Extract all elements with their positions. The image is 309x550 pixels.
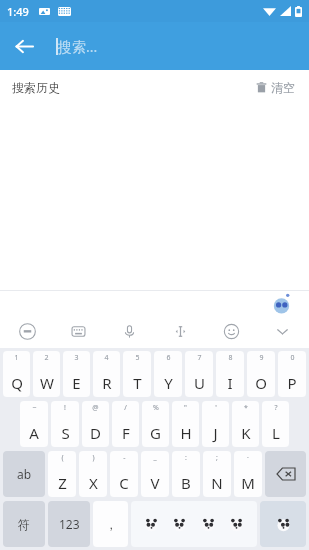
staticText: I [227, 373, 233, 393]
staticText: M [241, 473, 255, 493]
staticText: - [123, 453, 126, 463]
button[interactable]: @ [82, 401, 109, 447]
staticText: ( [61, 453, 64, 463]
button[interactable]: - [110, 451, 138, 497]
staticText: 6 [166, 353, 171, 363]
staticText: % [153, 403, 159, 413]
button[interactable]: Back [0, 22, 48, 70]
staticText: ab [17, 466, 32, 482]
staticText: 1:49 [7, 4, 29, 19]
staticText: ; [216, 453, 218, 463]
staticText: X [89, 473, 98, 493]
staticText: 搜索... [58, 37, 98, 56]
staticText: P [287, 373, 297, 393]
staticText: 3 [74, 353, 79, 363]
button[interactable]: 8 [216, 351, 244, 397]
staticText: Q [11, 373, 23, 393]
staticText: 4 [104, 353, 109, 363]
button[interactable]: Move cursor [163, 314, 197, 348]
staticText: U [194, 373, 205, 393]
button[interactable]: 符 [3, 501, 45, 547]
button[interactable]: 搜索... [56, 22, 309, 70]
staticText: 清空 [271, 80, 295, 95]
button[interactable]: ( [48, 451, 76, 497]
button[interactable]: 7 [185, 351, 213, 397]
staticText: A [29, 423, 39, 443]
staticText: F [122, 423, 130, 443]
staticText: E [72, 373, 81, 393]
staticText: 1 [14, 353, 19, 363]
button[interactable]: 清空 [254, 76, 297, 99]
staticText: ~ [32, 403, 37, 413]
button[interactable]: · [234, 451, 262, 497]
staticText: 5 [135, 353, 140, 363]
staticText: ， [105, 517, 117, 532]
staticText: 符 [18, 517, 30, 532]
button[interactable]: 4 [93, 351, 120, 397]
button[interactable]: ， [93, 501, 128, 547]
staticText: " [184, 403, 187, 413]
button[interactable]: Keyboard [61, 314, 95, 348]
staticText: R [102, 373, 112, 393]
staticText: 2 [44, 353, 49, 363]
staticText: 9 [259, 353, 264, 363]
button[interactable]: 5 [123, 351, 151, 397]
staticText: _ [153, 453, 157, 463]
button[interactable]: _ [141, 451, 169, 497]
staticText: K [241, 423, 251, 443]
staticText: ' [215, 403, 217, 413]
button[interactable]: 9 [247, 351, 275, 397]
button[interactable]: Emoji [214, 314, 248, 348]
button[interactable]: / [112, 401, 139, 447]
button[interactable]: ! [51, 401, 79, 447]
button[interactable]: Space [131, 501, 257, 547]
button[interactable]: ) [79, 451, 107, 497]
staticText: T [133, 373, 142, 393]
button[interactable]: ~ [20, 401, 48, 447]
button[interactable]: Enter [260, 501, 306, 547]
staticText: Y [164, 373, 173, 393]
staticText: / [124, 403, 127, 413]
button[interactable]: Voice input [112, 314, 146, 348]
button[interactable]: 6 [154, 351, 182, 397]
staticText: : [185, 453, 187, 463]
button[interactable]: Backspace [265, 451, 306, 497]
button[interactable]: ; [203, 451, 231, 497]
staticText: · [247, 453, 249, 463]
button[interactable]: ' [202, 401, 229, 447]
button[interactable]: 2 [33, 351, 60, 397]
button[interactable]: 123 [48, 501, 90, 547]
button[interactable]: 1 [3, 351, 30, 397]
button[interactable]: " [172, 401, 199, 447]
button[interactable]: Hide keyboard [265, 314, 299, 348]
staticText: * [244, 403, 248, 413]
staticText: 7 [197, 353, 202, 363]
staticText: Z [58, 473, 67, 493]
staticText: L [272, 423, 280, 443]
button[interactable]: 3 [63, 351, 90, 397]
staticText: O [255, 373, 267, 393]
button[interactable]: % [142, 401, 169, 447]
button[interactable]: ab [3, 451, 45, 497]
staticText: ! [64, 403, 66, 413]
staticText: G [150, 423, 161, 443]
staticText: 0 [290, 353, 295, 363]
button[interactable]: Assistant [269, 291, 293, 315]
staticText: ? [274, 403, 278, 413]
staticText: 搜索历史 [12, 80, 60, 95]
staticText: @ [92, 403, 99, 413]
button[interactable]: ? [262, 401, 289, 447]
staticText: 8 [228, 353, 233, 363]
staticText: J [213, 423, 218, 443]
button[interactable]: : [172, 451, 200, 497]
button[interactable]: * [232, 401, 259, 447]
staticText: ) [92, 453, 95, 463]
staticText: 123 [59, 516, 80, 532]
button[interactable]: 0 [278, 351, 306, 397]
staticText: B [181, 473, 191, 493]
staticText: N [211, 473, 223, 493]
staticText: V [150, 473, 160, 493]
staticText: H [180, 423, 192, 443]
staticText: C [119, 473, 129, 493]
button[interactable]: Input method [10, 314, 44, 348]
